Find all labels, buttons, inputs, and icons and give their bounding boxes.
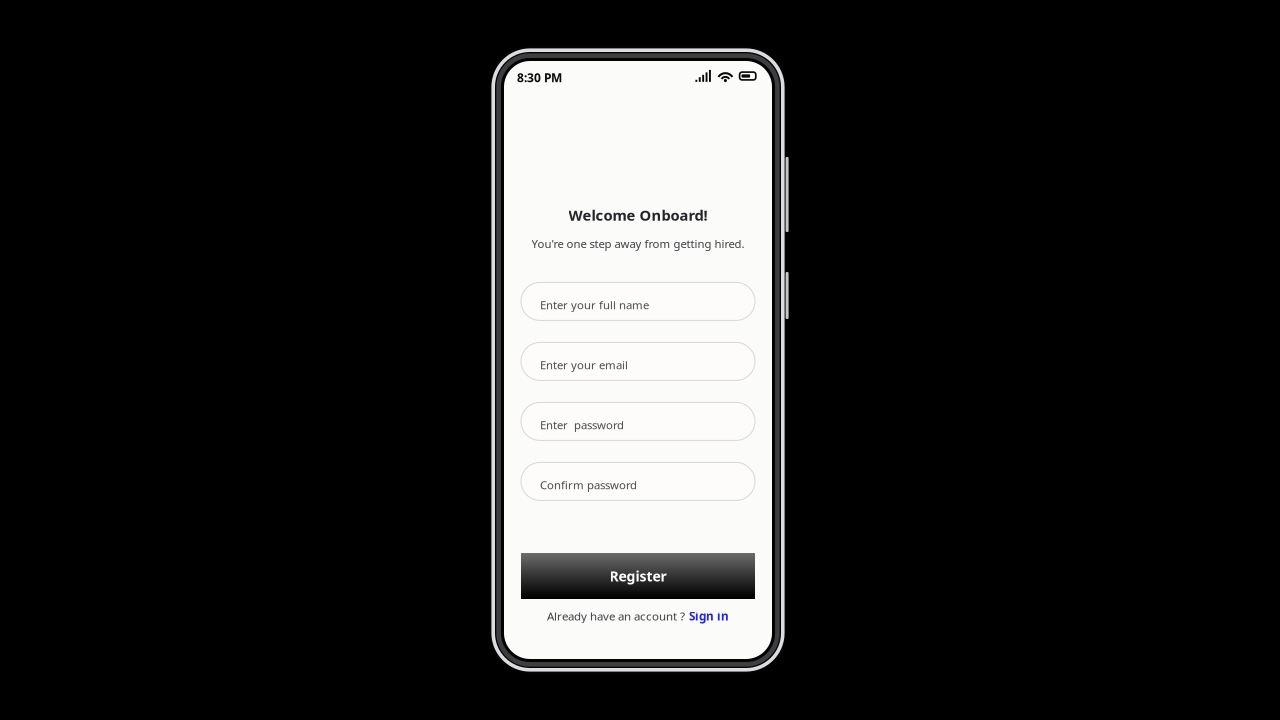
staticText: Enter your email <box>540 357 628 373</box>
staticText: 8:30 PM <box>517 69 562 86</box>
button[interactable]: Enter password <box>521 402 755 440</box>
staticText: Sign in <box>689 608 729 624</box>
staticText: Already have an account ? <box>547 608 685 624</box>
staticText: Confirm password <box>540 477 637 493</box>
staticText: You're one step away from getting hired. <box>531 236 744 251</box>
staticText: Enter password <box>540 417 624 433</box>
button[interactable]: Already have an account ? <box>547 605 729 627</box>
button[interactable]: Enter your email <box>521 342 755 380</box>
staticText: Register <box>609 566 666 586</box>
staticText: Enter your full name <box>540 297 649 313</box>
button[interactable]: Enter your full name <box>521 282 755 320</box>
staticText: Welcome Onboard! <box>568 205 707 225</box>
button[interactable]: Confirm password <box>521 462 755 500</box>
button[interactable]: Register <box>521 553 755 599</box>
